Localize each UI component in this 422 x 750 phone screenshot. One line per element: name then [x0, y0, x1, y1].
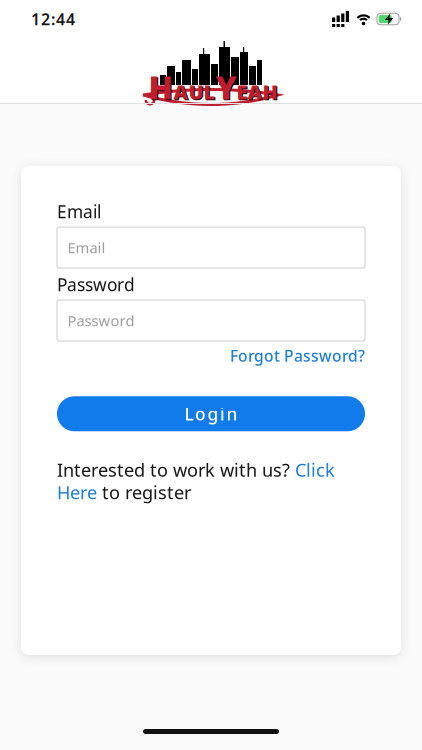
- staticText: Interested to work with us?: [57, 457, 295, 482]
- staticText: Click: [295, 457, 335, 482]
- button[interactable]: Email: [57, 227, 365, 268]
- staticText: Email: [67, 238, 105, 257]
- staticText: o: [195, 402, 206, 426]
- button[interactable]: L: [57, 396, 365, 431]
- staticText: Forgot Password?: [230, 345, 365, 366]
- staticText: g: [207, 402, 218, 426]
- staticText: n: [226, 402, 237, 426]
- staticText: Email: [57, 200, 101, 223]
- staticText: HAULYEAH: [148, 66, 277, 108]
- staticText: L: [184, 402, 193, 426]
- staticText: Here: [57, 480, 97, 505]
- button[interactable]: Password: [57, 300, 365, 341]
- staticText: i: [220, 402, 225, 426]
- staticText: Password: [67, 311, 134, 330]
- button[interactable]: Forgot Password?: [230, 345, 365, 366]
- staticText: Password: [57, 273, 135, 296]
- staticText: HAULYEAH: [149, 67, 278, 109]
- staticText: 12:44: [31, 8, 75, 30]
- staticText: to register: [97, 480, 191, 505]
- button[interactable]: Interested to work with us?: [57, 457, 335, 505]
